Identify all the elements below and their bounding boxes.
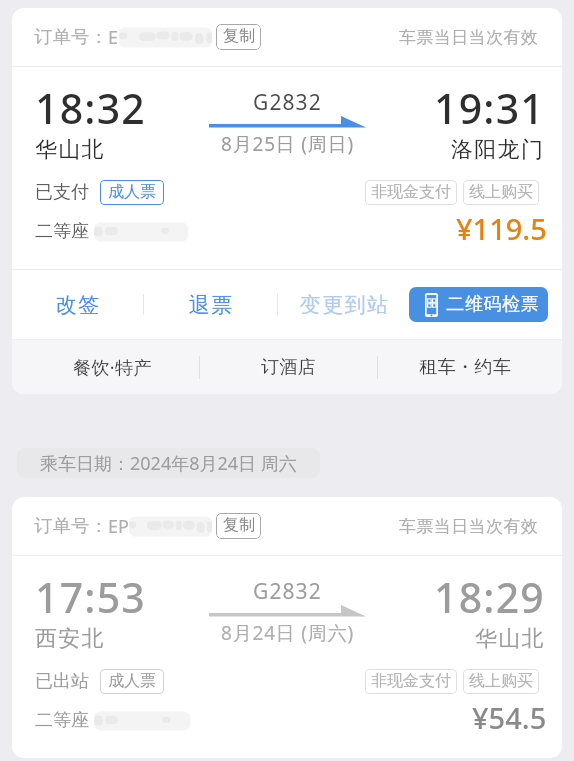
staticText: 17:53	[35, 578, 146, 622]
staticText: 非现金支付	[371, 184, 451, 202]
staticText: G2832	[253, 582, 322, 604]
staticText: 变更到站	[299, 292, 389, 318]
staticText: 西安北	[35, 625, 105, 653]
staticText: 成人票	[108, 673, 156, 691]
button[interactable]: 复制	[216, 513, 261, 539]
staticText: 餐饮·特产	[73, 355, 152, 380]
staticText: 8月24日 (周六)	[221, 621, 354, 646]
staticText: 车票当日当次有效	[399, 516, 539, 537]
staticText: 已支付	[35, 181, 89, 204]
staticText: 18:29	[434, 578, 545, 622]
staticText: 订单号：	[34, 515, 108, 538]
button[interactable]: 改签	[12, 292, 143, 318]
staticText: 二维码检票	[446, 293, 539, 316]
staticText: 订酒店	[261, 356, 317, 379]
staticText: 非现金支付	[371, 673, 451, 691]
staticText: 二等座	[35, 709, 89, 732]
button[interactable]: 餐饮·特产	[12, 355, 199, 380]
staticText: ¥54.5	[472, 705, 547, 736]
button[interactable]: 订单号：	[12, 8, 562, 394]
staticText: 复制	[223, 28, 255, 46]
staticText: ¥119.5	[456, 216, 547, 247]
button[interactable]: 二维码检票	[409, 287, 548, 322]
staticText: 线上购买	[469, 184, 533, 202]
other: 二维码检票	[425, 293, 438, 317]
button[interactable]: 退票	[144, 292, 277, 318]
button[interactable]: 订酒店	[200, 356, 377, 379]
staticText: G2832	[253, 93, 322, 115]
staticText: 19:31	[434, 89, 545, 133]
staticText: 车票当日当次有效	[399, 27, 539, 48]
staticText: 退票	[188, 292, 233, 318]
staticText: 复制	[223, 517, 255, 535]
button[interactable]: 租车・约车	[378, 356, 562, 379]
staticText: 洛阳龙门	[451, 136, 545, 164]
staticText: 线上购买	[469, 673, 533, 691]
staticText: E	[108, 25, 119, 50]
staticText: 乘车日期：2024年8月24日 周六	[40, 451, 297, 476]
staticText: 改签	[55, 292, 100, 318]
staticText: 已出站	[35, 670, 89, 693]
staticText: 华山北	[35, 136, 105, 164]
staticText: 订单号：	[34, 26, 108, 49]
staticText: 18:32	[35, 89, 146, 133]
button[interactable]: 复制	[216, 24, 261, 50]
button[interactable]: 变更到站	[278, 292, 409, 318]
staticText: 8月25日 (周日)	[221, 132, 354, 157]
staticText: 租车・约车	[419, 356, 511, 379]
staticText: 华山北	[475, 625, 545, 653]
button[interactable]: 订单号：	[12, 497, 562, 758]
staticText: 二等座	[35, 220, 89, 243]
staticText: 成人票	[108, 184, 156, 202]
staticText: EP	[108, 514, 129, 539]
